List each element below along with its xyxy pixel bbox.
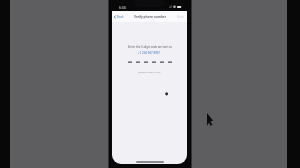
staticText: Verify phone number (134, 15, 166, 19)
staticText: Enter the 6-digit code we sent to (128, 45, 172, 49)
staticText: 6:34 (119, 5, 126, 9)
button[interactable] (168, 60, 172, 63)
button[interactable] (160, 60, 164, 63)
button[interactable] (152, 60, 156, 63)
button[interactable]: Back (114, 15, 124, 19)
button[interactable] (128, 60, 132, 63)
staticText: +1 234 567 8901 (138, 51, 161, 55)
button[interactable]: Resend code in 0:59 (138, 70, 161, 73)
button[interactable] (136, 60, 140, 63)
other: Pointer (207, 113, 214, 126)
button[interactable] (144, 60, 148, 63)
staticText: Back (117, 15, 124, 19)
button[interactable]: Next (177, 15, 184, 19)
